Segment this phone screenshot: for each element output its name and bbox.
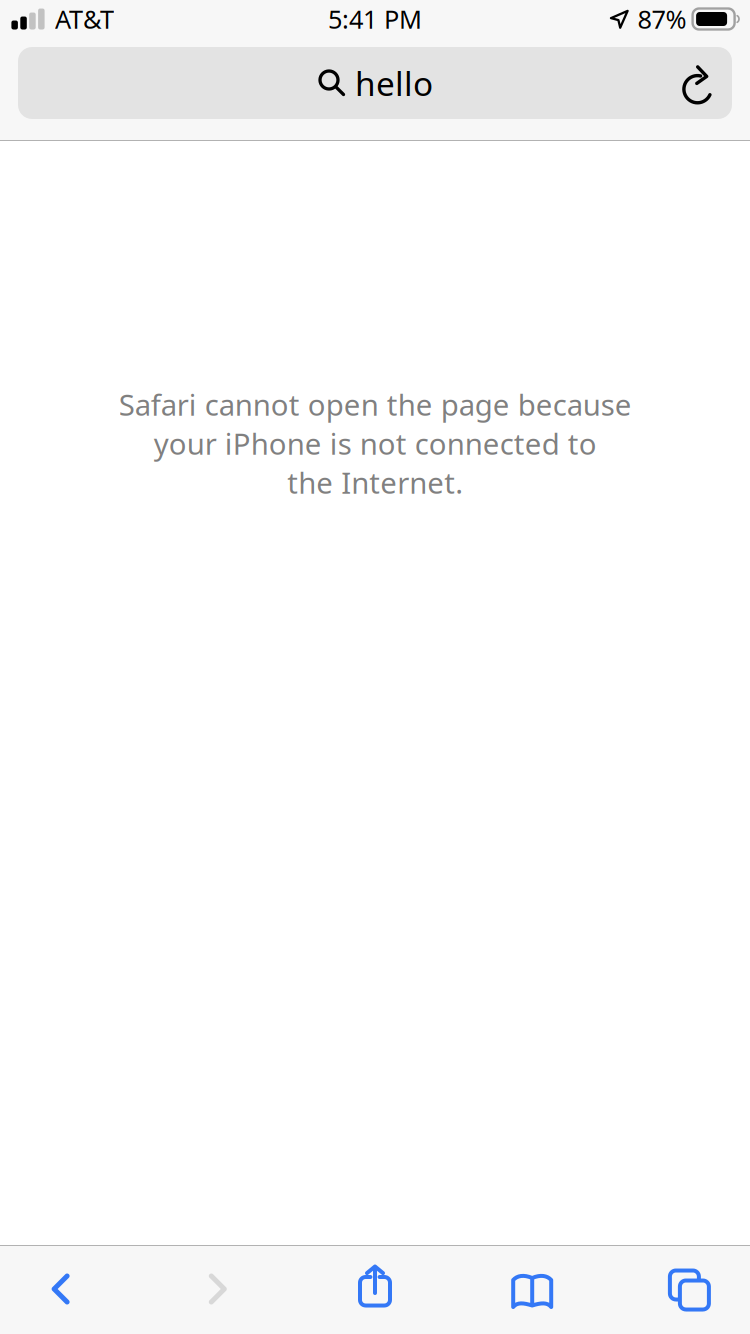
- button[interactable]: Forward: [170, 1245, 266, 1333]
- button[interactable]: Back: [13, 1245, 109, 1333]
- button[interactable]: Bookmarks: [484, 1245, 580, 1333]
- staticText: hello: [355, 61, 433, 105]
- staticText: AT&T: [55, 2, 114, 36]
- button[interactable]: Share: [327, 1245, 423, 1333]
- staticText: Safari cannot open the page because your…: [118, 385, 631, 502]
- staticText: 87%: [638, 2, 687, 36]
- button[interactable]: Tabs: [641, 1245, 737, 1333]
- button[interactable]: Reload: [668, 47, 724, 119]
- staticText: 5:41 PM: [328, 2, 422, 36]
- button[interactable]: hello: [18, 47, 732, 119]
